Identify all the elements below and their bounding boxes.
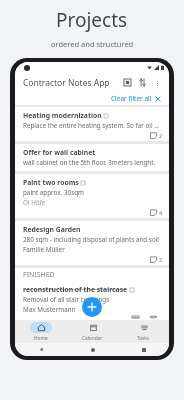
- button[interactable]: Offer for wall cabinet: [15, 144, 169, 171]
- button[interactable]: More options: [150, 76, 164, 90]
- staticText: Tasks: [137, 335, 150, 342]
- staticText: Clear filter all: [111, 94, 152, 103]
- staticText: Heating modernization: [23, 111, 102, 120]
- button[interactable]: Add project: [82, 297, 102, 317]
- button[interactable]: Recents: [118, 343, 169, 356]
- staticText: Calendar: [82, 335, 103, 342]
- staticText: wall cabinet on the 5th floor. 3meters l…: [23, 158, 156, 167]
- staticText: 4: [159, 209, 163, 216]
- staticText: Familie Müller: [23, 245, 65, 254]
- button[interactable]: reconstruction of the staircase: [15, 281, 169, 320]
- button[interactable]: Home: [15, 320, 67, 343]
- button[interactable]: Back: [15, 343, 67, 356]
- staticText: Projects: [56, 7, 128, 33]
- button[interactable]: Paint two rooms: [15, 174, 169, 218]
- staticText: Contractor Notes App: [23, 77, 110, 89]
- button[interactable]: Calendar: [67, 320, 118, 343]
- staticText: Removal of all stair coverings: [23, 295, 110, 304]
- staticText: paint approx. 30sqm: [23, 188, 84, 197]
- staticText: Paint two rooms: [23, 178, 79, 187]
- staticText: Home: [34, 335, 48, 342]
- staticText: FINISHED: [23, 270, 55, 280]
- staticText: reconstruction of the staircase: [23, 285, 128, 294]
- staticText: Redesign Garden: [23, 225, 81, 234]
- staticText: ordered and structured: [51, 39, 134, 49]
- staticText: Replace the entire heating system. So fa…: [23, 121, 163, 130]
- button[interactable]: Clear filter all: [109, 93, 163, 104]
- button[interactable]: Heating modernization: [15, 107, 169, 141]
- button[interactable]: Sort: [135, 75, 150, 90]
- button[interactable]: Filter: [120, 75, 135, 90]
- staticText: Öl Höfe: [23, 198, 46, 207]
- staticText: Offer for wall cabinet: [23, 148, 96, 157]
- button[interactable]: Home: [67, 343, 118, 356]
- staticText: 2: [159, 256, 163, 263]
- staticText: Max Mustermann: [23, 305, 76, 314]
- staticText: 280 sqm - including disposal of plants a…: [23, 235, 159, 244]
- button[interactable]: Redesign Garden: [15, 221, 169, 265]
- button[interactable]: Tasks: [118, 320, 169, 343]
- staticText: 2: [159, 132, 163, 139]
